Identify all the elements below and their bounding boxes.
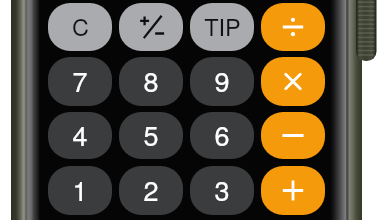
button[interactable]: 2 — [119, 166, 183, 215]
button[interactable]: 1 — [48, 166, 112, 215]
button[interactable]: Plus or minus — [119, 3, 183, 51]
staticText: 7 — [72, 61, 88, 100]
staticText: 3 — [214, 170, 230, 209]
button[interactable]: C — [48, 3, 112, 51]
button[interactable]: 8 — [119, 57, 183, 106]
button[interactable]: 3 — [190, 166, 254, 215]
button[interactable]: 7 — [48, 57, 112, 106]
button[interactable]: Plus — [261, 166, 325, 215]
staticText: 4 — [72, 115, 88, 154]
button[interactable]: Minus — [261, 112, 325, 159]
button[interactable]: Divide — [261, 3, 325, 51]
staticText: 1 — [72, 170, 88, 209]
staticText: 6 — [214, 115, 230, 154]
staticText: 2 — [143, 170, 159, 209]
staticText: 5 — [143, 115, 159, 154]
staticText: TIP — [204, 9, 241, 43]
staticText: 8 — [143, 61, 159, 100]
button[interactable]: 9 — [190, 57, 254, 106]
staticText: 9 — [214, 61, 230, 100]
button[interactable]: Multiply — [261, 57, 325, 106]
button[interactable]: 5 — [119, 112, 183, 159]
staticText: C — [72, 9, 89, 43]
button[interactable]: TIP — [190, 3, 254, 51]
button[interactable]: 4 — [48, 112, 112, 159]
button[interactable]: 6 — [190, 112, 254, 159]
